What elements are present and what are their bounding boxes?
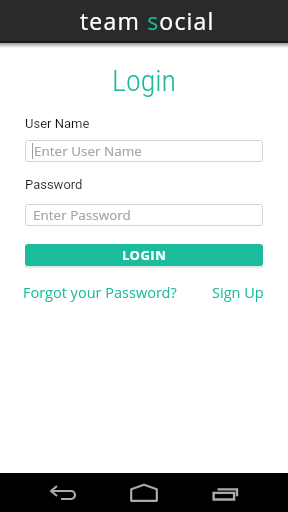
button[interactable]: Enter Password (25, 204, 263, 226)
button[interactable] (206, 473, 243, 512)
staticText: LOGIN (122, 246, 167, 264)
button[interactable]: Forgot your Password? (23, 283, 177, 303)
staticText: team social (80, 5, 215, 36)
button[interactable]: Enter User Name (25, 140, 263, 162)
button[interactable]: Sign Up (212, 283, 264, 303)
button[interactable] (125, 473, 162, 512)
staticText: User Name (25, 116, 90, 131)
button[interactable]: LOGIN (25, 244, 263, 266)
staticText: Password (25, 177, 83, 192)
staticText: Enter User Name (34, 142, 142, 160)
staticText: Login (0, 63, 288, 98)
button[interactable] (45, 473, 82, 512)
staticText: Enter Password (33, 206, 131, 224)
